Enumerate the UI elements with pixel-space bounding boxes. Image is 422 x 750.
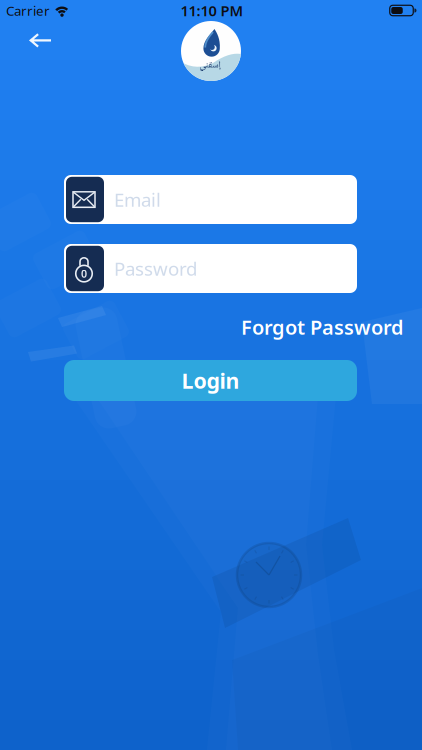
staticText: Password — [114, 256, 197, 281]
staticText: Login — [181, 366, 239, 395]
button[interactable] — [29, 33, 51, 47]
staticText: 11:10 PM — [180, 1, 243, 20]
staticText: Email — [114, 187, 161, 212]
staticText: Forgot Password — [241, 314, 404, 340]
staticText: 0 — [81, 266, 87, 281]
button[interactable]: 0 — [64, 244, 357, 293]
staticText: إسقني — [199, 58, 220, 73]
button[interactable]: Forgot Password — [241, 314, 404, 340]
button[interactable]: Email — [64, 175, 357, 224]
button[interactable]: Login — [64, 360, 357, 401]
staticText: Carrier — [6, 2, 50, 19]
